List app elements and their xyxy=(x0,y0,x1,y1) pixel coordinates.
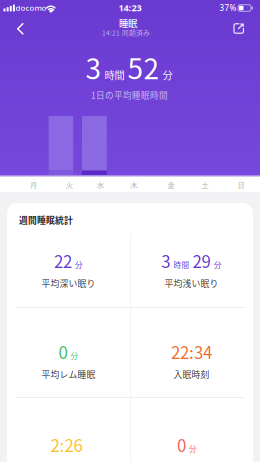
staticText: 29 xyxy=(193,248,211,273)
staticText: 52 xyxy=(127,47,159,87)
staticText: 0 xyxy=(58,339,67,364)
staticText: 時間 xyxy=(173,259,189,270)
button[interactable]: 22 xyxy=(41,248,95,290)
button[interactable]: 0 xyxy=(41,339,95,381)
staticText: 3 xyxy=(161,248,170,273)
staticText: 平均レム睡眠 xyxy=(41,368,95,380)
staticText: 分 xyxy=(214,259,222,270)
button[interactable]: Back xyxy=(12,17,29,40)
staticText: 22:34 xyxy=(171,339,212,364)
staticText: 14:23 xyxy=(118,1,141,14)
staticText: 日 xyxy=(237,179,244,190)
button[interactable]: 3 xyxy=(161,248,222,290)
staticText: 睡眠 xyxy=(119,16,137,30)
staticText: 2:26 xyxy=(50,432,82,457)
staticText: 37% xyxy=(219,2,236,13)
staticText: 入眠時刻 xyxy=(173,368,209,380)
staticText: 分 xyxy=(162,67,172,82)
button[interactable]: Share xyxy=(229,19,248,38)
staticText: 火 xyxy=(66,179,73,190)
staticText: 分 xyxy=(71,350,79,361)
button[interactable]: 22:34 xyxy=(171,339,212,381)
staticText: 時間 xyxy=(104,67,124,82)
staticText: 土 xyxy=(201,179,208,190)
staticText: 金 xyxy=(167,179,174,190)
staticText: 平均浅い眠り xyxy=(164,277,218,289)
staticText: 分 xyxy=(75,259,83,270)
staticText: 平均深い眠り xyxy=(41,277,95,289)
staticText: 水 xyxy=(97,179,104,190)
staticText: 22 xyxy=(54,248,72,273)
staticText: 月 xyxy=(30,179,37,190)
staticText: 木 xyxy=(130,179,137,190)
staticText: 0 xyxy=(177,432,186,457)
button[interactable]: 0 xyxy=(160,432,214,462)
staticText: 週間睡眠統計 xyxy=(19,214,73,226)
staticText: 3 xyxy=(85,47,101,87)
staticText: 分 xyxy=(189,443,197,454)
staticText: docomo xyxy=(15,2,46,13)
staticText: 14:21 同期済み xyxy=(102,28,150,37)
button[interactable]: 2:26 xyxy=(48,432,84,462)
staticText: 1日の平均睡眠時間 xyxy=(91,89,168,101)
